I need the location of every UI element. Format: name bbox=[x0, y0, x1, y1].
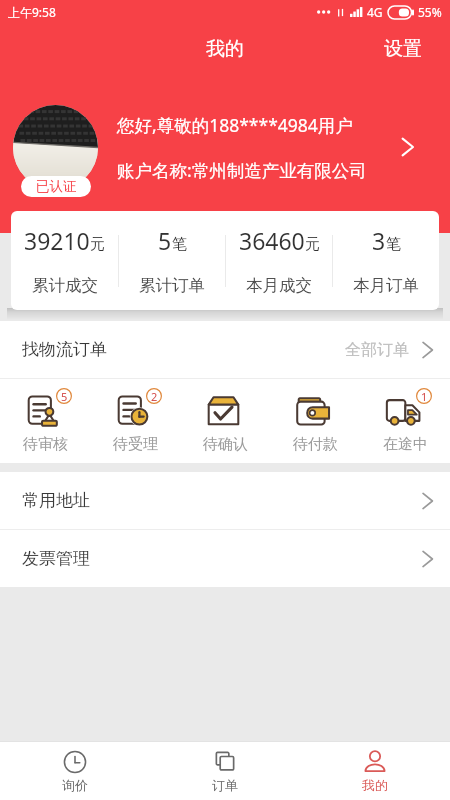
staticText: 订单 bbox=[212, 777, 238, 793]
staticText: 待审核 bbox=[23, 435, 68, 454]
button[interactable]: 待付款 bbox=[270, 379, 360, 463]
staticText: 元 bbox=[305, 235, 320, 254]
staticText: 已认证 bbox=[36, 178, 77, 195]
staticText: 笔 bbox=[172, 235, 187, 254]
staticText: 待受理 bbox=[113, 435, 158, 454]
button[interactable]: 待确认 bbox=[180, 379, 270, 463]
staticText: 36460 bbox=[239, 225, 305, 256]
staticText: 5 bbox=[61, 389, 68, 404]
button[interactable]: 5 bbox=[0, 379, 90, 463]
staticText: 3 bbox=[372, 225, 386, 256]
button[interactable]: 发票管理 bbox=[0, 530, 450, 587]
staticText: 常用地址 bbox=[22, 490, 90, 511]
button[interactable]: 设置 bbox=[368, 25, 450, 73]
staticText: 39210 bbox=[24, 225, 90, 256]
button[interactable]: 1 bbox=[360, 379, 450, 463]
staticText: 2 bbox=[151, 389, 158, 404]
staticText: 4G bbox=[367, 4, 383, 20]
button[interactable]: 已认证 bbox=[0, 99, 450, 195]
staticText: 我的 bbox=[362, 777, 388, 793]
staticText: 1 bbox=[421, 389, 428, 404]
staticText: 上午9:58 bbox=[8, 4, 56, 20]
button[interactable]: 2 bbox=[90, 379, 180, 463]
staticText: 本月成交 bbox=[246, 275, 312, 296]
staticText: 本月订单 bbox=[353, 275, 419, 296]
button[interactable]: 订单 bbox=[150, 742, 300, 800]
staticText: 发票管理 bbox=[22, 548, 90, 569]
button[interactable]: 找物流订单 bbox=[0, 321, 450, 378]
staticText: 累计订单 bbox=[139, 275, 205, 296]
staticText: 您好,尊敬的188****4984用户 bbox=[117, 113, 353, 137]
staticText: 全部订单 bbox=[345, 340, 409, 360]
staticText: 待付款 bbox=[293, 435, 338, 454]
button[interactable]: 我的 bbox=[300, 742, 450, 800]
staticText: 55% bbox=[418, 4, 442, 20]
staticText: 找物流订单 bbox=[22, 339, 107, 360]
staticText: 账户名称:常州制造产业有限公司 bbox=[117, 158, 367, 182]
staticText: 在途中 bbox=[383, 435, 428, 454]
staticText: 元 bbox=[90, 235, 105, 254]
button[interactable]: 常用地址 bbox=[0, 472, 450, 529]
staticText: 询价 bbox=[62, 777, 88, 793]
staticText: 待确认 bbox=[203, 435, 248, 454]
staticText: 5 bbox=[158, 225, 172, 256]
staticText: 笔 bbox=[386, 235, 401, 254]
button[interactable]: 询价 bbox=[0, 742, 150, 800]
staticText: 设置 bbox=[384, 37, 422, 61]
staticText: 我的 bbox=[206, 37, 244, 61]
staticText: 累计成交 bbox=[32, 275, 98, 296]
